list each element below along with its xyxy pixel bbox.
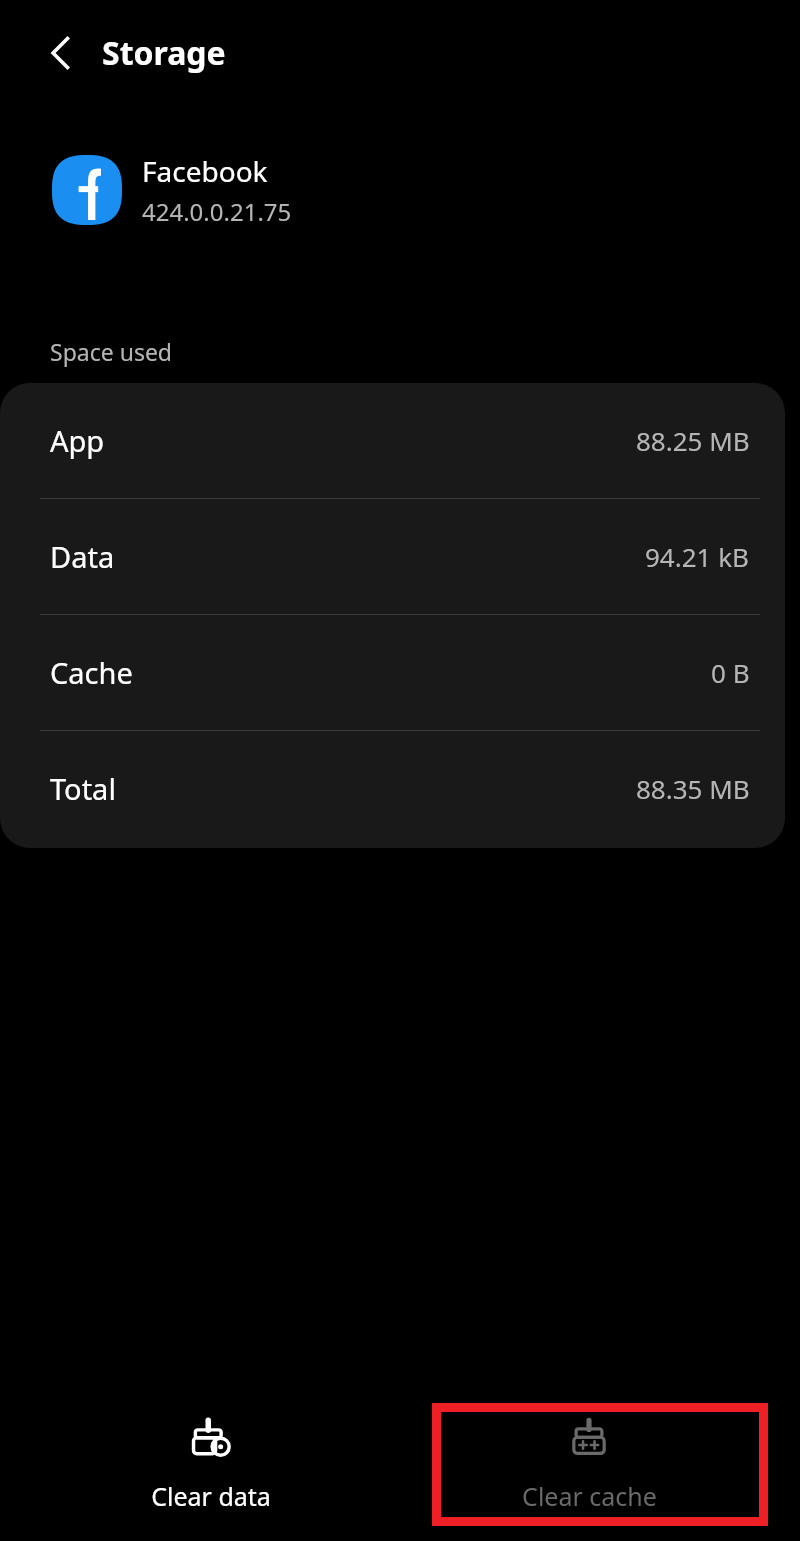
staticText: Data (50, 537, 115, 576)
staticText: Cache (50, 653, 133, 692)
staticText: 88.25 MB (636, 423, 750, 458)
button[interactable]: App (0, 383, 785, 498)
button[interactable]: Back (34, 26, 88, 80)
staticText: 0 B (711, 655, 750, 690)
staticText: App (50, 421, 105, 460)
button[interactable]: Data (0, 499, 785, 614)
button[interactable]: Total (0, 731, 785, 846)
staticText: Clear data (151, 1479, 271, 1513)
staticText: Storage (102, 31, 226, 75)
staticText: 424.0.0.21.75 (142, 195, 292, 228)
button[interactable]: Clear cache (421, 1401, 757, 1531)
staticText: Total (50, 769, 116, 808)
staticText: Clear cache (522, 1479, 657, 1513)
button[interactable]: Clear data (43, 1401, 379, 1531)
staticText: 88.35 MB (636, 771, 750, 806)
button[interactable]: Cache (0, 615, 785, 730)
staticText: 94.21 kB (645, 539, 750, 574)
staticText: Facebook (142, 152, 268, 190)
staticText: Space used (50, 336, 173, 367)
